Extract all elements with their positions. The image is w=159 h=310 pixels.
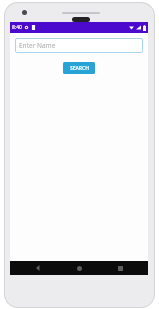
button[interactable]: Back [25, 261, 51, 275]
staticText: Enter Name [19, 41, 56, 50]
staticText: 8:40 [12, 24, 22, 31]
button[interactable]: SEARCH [63, 62, 95, 74]
button[interactable]: Enter Name [15, 38, 143, 53]
staticText: SEARCH [70, 65, 89, 72]
button[interactable]: Recent apps [107, 261, 133, 275]
button[interactable]: Home [66, 261, 92, 275]
